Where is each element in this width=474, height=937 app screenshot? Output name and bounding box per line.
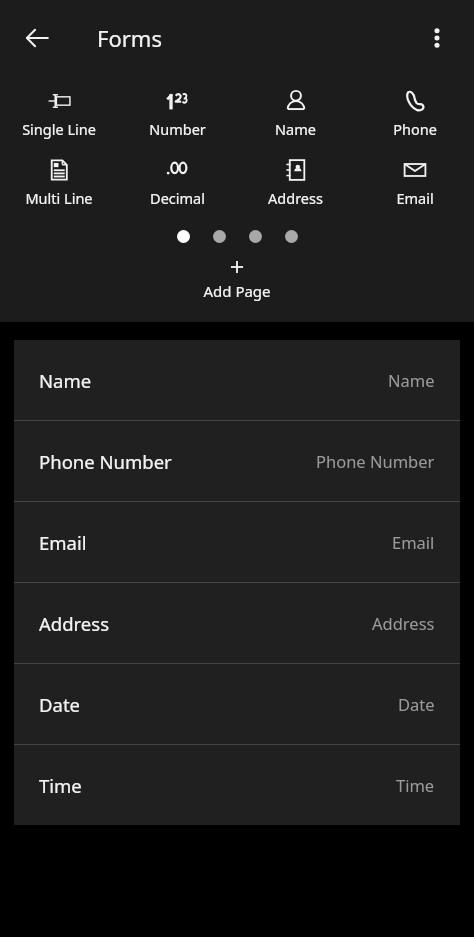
button[interactable]: Address: [14, 583, 460, 663]
staticText: Address: [372, 612, 435, 634]
staticText: Phone Number: [316, 450, 435, 472]
button[interactable]: Date: [14, 664, 460, 744]
button[interactable]: Decimal: [118, 155, 236, 210]
staticText: Name: [388, 369, 435, 391]
button[interactable]: Number: [118, 86, 236, 141]
button[interactable]: More options: [414, 15, 460, 61]
staticText: Address: [268, 188, 323, 208]
button[interactable]: Email: [355, 155, 474, 210]
staticText: Name: [275, 119, 316, 139]
staticText: Address: [39, 611, 110, 636]
button[interactable]: Time: [14, 745, 460, 825]
staticText: Single Line: [22, 119, 96, 139]
staticText: Time: [396, 774, 435, 796]
button[interactable]: Add Page: [0, 259, 474, 301]
button[interactable]: Name: [236, 86, 355, 141]
button[interactable]: Page: [249, 230, 262, 243]
staticText: Time: [39, 773, 82, 798]
staticText: Email: [39, 530, 87, 555]
staticText: Add Page: [203, 281, 271, 301]
staticText: Date: [398, 693, 435, 715]
staticText: Phone Number: [39, 449, 172, 474]
staticText: Date: [39, 692, 80, 717]
staticText: Phone: [393, 119, 437, 139]
staticText: Multi Line: [25, 188, 93, 208]
button[interactable]: Page: [285, 230, 298, 243]
button[interactable]: Multi Line: [0, 155, 118, 210]
staticText: Forms: [97, 23, 162, 53]
button[interactable]: Phone Number: [14, 421, 460, 501]
staticText: Email: [392, 531, 435, 553]
staticText: Number: [149, 119, 206, 139]
button[interactable]: Page: [213, 230, 226, 243]
button[interactable]: Phone: [355, 86, 474, 141]
button[interactable]: Address: [236, 155, 355, 210]
button[interactable]: Back: [14, 15, 60, 61]
staticText: Name: [39, 368, 92, 393]
staticText: Email: [396, 188, 434, 208]
button[interactable]: Name: [14, 340, 460, 420]
button[interactable]: Email: [14, 502, 460, 582]
button[interactable]: Page 1, selected: [177, 230, 190, 243]
button[interactable]: Single Line: [0, 86, 118, 141]
staticText: Decimal: [150, 188, 205, 208]
